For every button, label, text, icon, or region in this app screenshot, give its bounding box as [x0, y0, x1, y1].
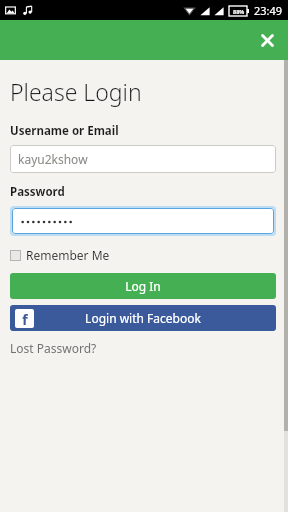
- staticText: Please Login: [10, 76, 142, 107]
- button[interactable]: Remember Me: [10, 245, 110, 265]
- button[interactable]: Close: [252, 25, 282, 55]
- staticText: 23:49: [254, 3, 283, 18]
- button[interactable]: Lost Password?: [10, 340, 97, 356]
- staticText: 88%: [233, 8, 245, 15]
- staticText: f: [22, 309, 28, 328]
- staticText: Username or Email: [10, 123, 119, 139]
- staticText: kayu2kshow: [18, 151, 88, 167]
- button[interactable]: Login with Facebook: [10, 305, 276, 331]
- staticText: Log In: [125, 278, 161, 294]
- staticText: Password: [10, 184, 65, 200]
- staticText: Login with Facebook: [85, 310, 201, 326]
- staticText: Lost Password?: [10, 340, 97, 356]
- staticText: Remember Me: [26, 247, 110, 263]
- button[interactable]: kayu2kshow: [10, 145, 276, 173]
- button[interactable]: Log In: [10, 273, 276, 299]
- button[interactable]: [12, 208, 274, 234]
